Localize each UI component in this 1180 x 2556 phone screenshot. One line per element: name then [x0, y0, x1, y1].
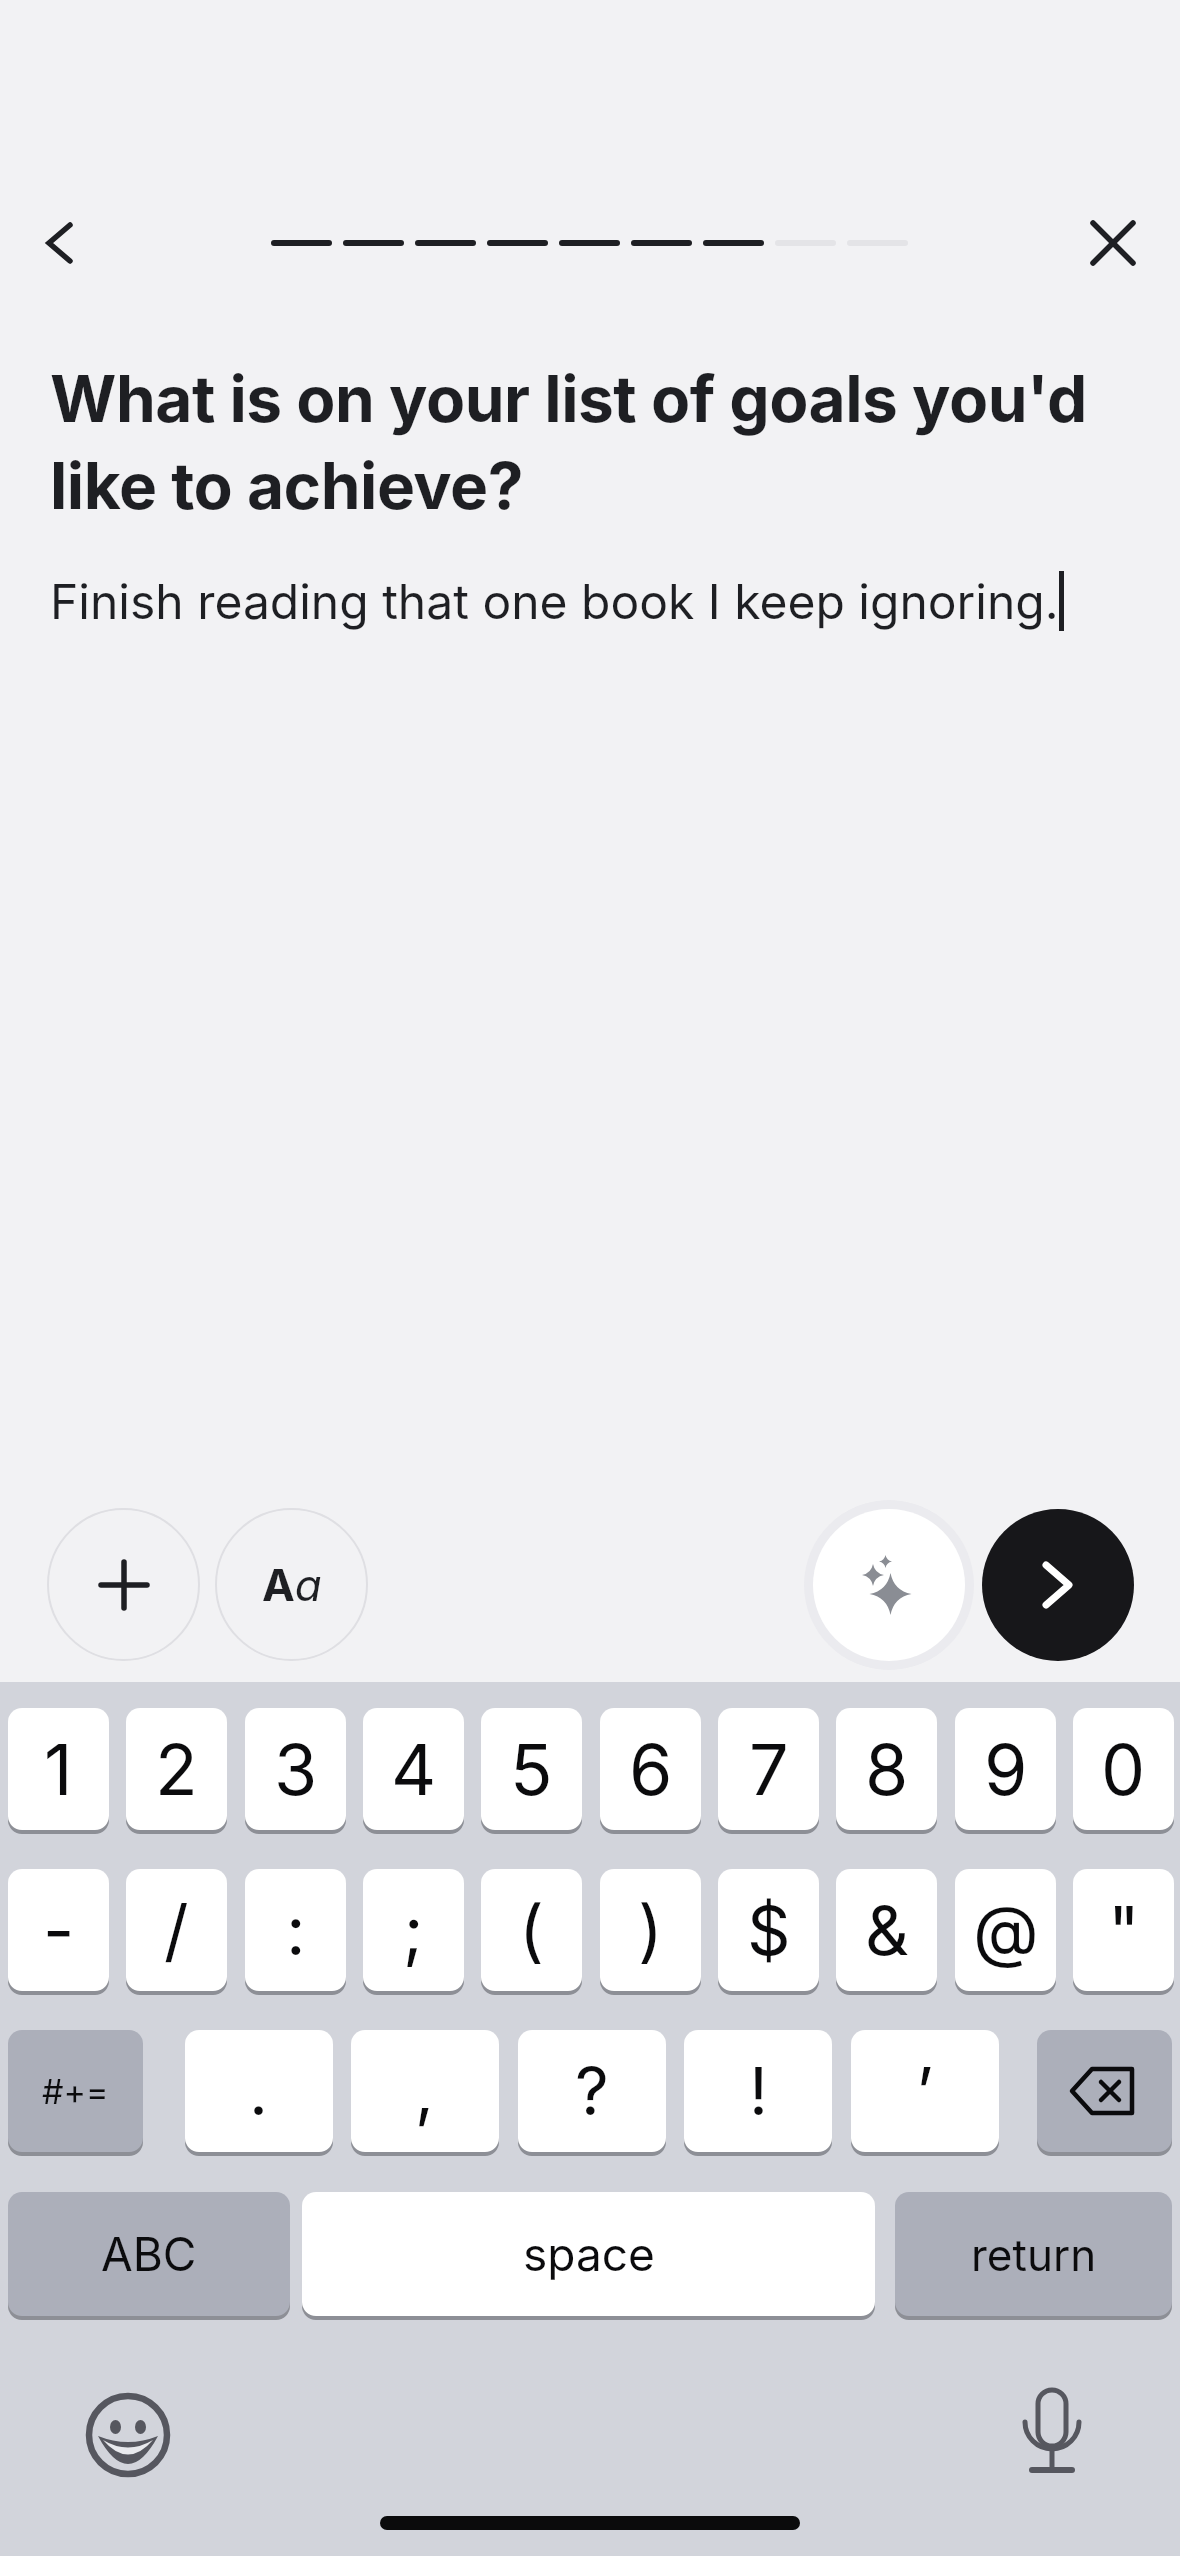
button[interactable] [86, 2393, 170, 2477]
staticText: 7 [749, 1727, 789, 1812]
staticText: , [415, 2051, 435, 2131]
button[interactable]: 9 [955, 1708, 1056, 1830]
button[interactable]: 5 [481, 1708, 582, 1830]
staticText: Aa [262, 1558, 322, 1611]
button[interactable] [1083, 213, 1143, 273]
button[interactable] [1037, 2030, 1172, 2152]
button[interactable]: / [126, 1869, 227, 1991]
staticText: - [43, 1889, 75, 1971]
button[interactable]: ; [363, 1869, 464, 1991]
staticText: ) [638, 1889, 663, 1971]
staticText: 1 [44, 1727, 73, 1812]
button[interactable]: 8 [836, 1708, 937, 1830]
button[interactable] [47, 1508, 200, 1661]
staticText: 2 [155, 1727, 198, 1812]
button[interactable] [813, 1509, 965, 1661]
button[interactable]: , [351, 2030, 499, 2152]
button[interactable]: ( [481, 1869, 582, 1991]
staticText: #+= [42, 2071, 109, 2112]
button[interactable]: ) [600, 1869, 701, 1991]
button[interactable]: 6 [600, 1708, 701, 1830]
button[interactable]: return [895, 2192, 1172, 2316]
staticText: 6 [629, 1727, 673, 1812]
staticText: ? [575, 2051, 609, 2131]
button[interactable]: $ [718, 1869, 819, 1991]
button[interactable] [24, 208, 94, 278]
button[interactable]: ? [518, 2030, 666, 2152]
button[interactable]: 1 [8, 1708, 109, 1830]
staticText: / [164, 1889, 189, 1971]
staticText: @ [973, 1889, 1039, 1971]
staticText: 4 [391, 1727, 437, 1812]
button[interactable] [1014, 2385, 1094, 2480]
button[interactable]: ’ [851, 2030, 999, 2152]
button[interactable]: ! [684, 2030, 832, 2152]
button[interactable]: Aa [215, 1508, 368, 1661]
staticText: : [286, 1889, 306, 1971]
staticText: & [865, 1889, 909, 1971]
staticText: ! [749, 2051, 768, 2131]
staticText: ’ [916, 2051, 934, 2131]
staticText: ; [403, 1889, 424, 1971]
staticText: What is on your list of goals you'd like… [50, 360, 1160, 524]
staticText: 9 [984, 1727, 1028, 1812]
button[interactable]: . [185, 2030, 333, 2152]
button[interactable]: 2 [126, 1708, 227, 1830]
staticText: . [249, 2051, 269, 2131]
button[interactable]: - [8, 1869, 109, 1991]
staticText: space [523, 2226, 655, 2282]
button[interactable]: #+= [8, 2030, 143, 2152]
staticText: ( [519, 1889, 544, 1971]
staticText: $ [747, 1889, 791, 1971]
button[interactable]: : [245, 1869, 346, 1991]
staticText: " [1108, 1889, 1140, 1971]
staticText: Finish reading that one book I keep igno… [50, 572, 1059, 630]
staticText: ABC [101, 2226, 197, 2282]
button[interactable]: & [836, 1869, 937, 1991]
button[interactable]: 4 [363, 1708, 464, 1830]
staticText: return [971, 2228, 1097, 2281]
button[interactable]: ABC [8, 2192, 290, 2316]
staticText: 5 [510, 1727, 553, 1812]
button[interactable]: 7 [718, 1708, 819, 1830]
staticText: 0 [1101, 1727, 1146, 1812]
staticText: 3 [274, 1727, 318, 1812]
button[interactable] [982, 1509, 1134, 1661]
button[interactable]: " [1073, 1869, 1174, 1991]
button[interactable]: 3 [245, 1708, 346, 1830]
button[interactable]: space [302, 2192, 875, 2316]
staticText: 8 [865, 1727, 909, 1812]
button[interactable]: @ [955, 1869, 1056, 1991]
button[interactable]: 0 [1073, 1708, 1174, 1830]
